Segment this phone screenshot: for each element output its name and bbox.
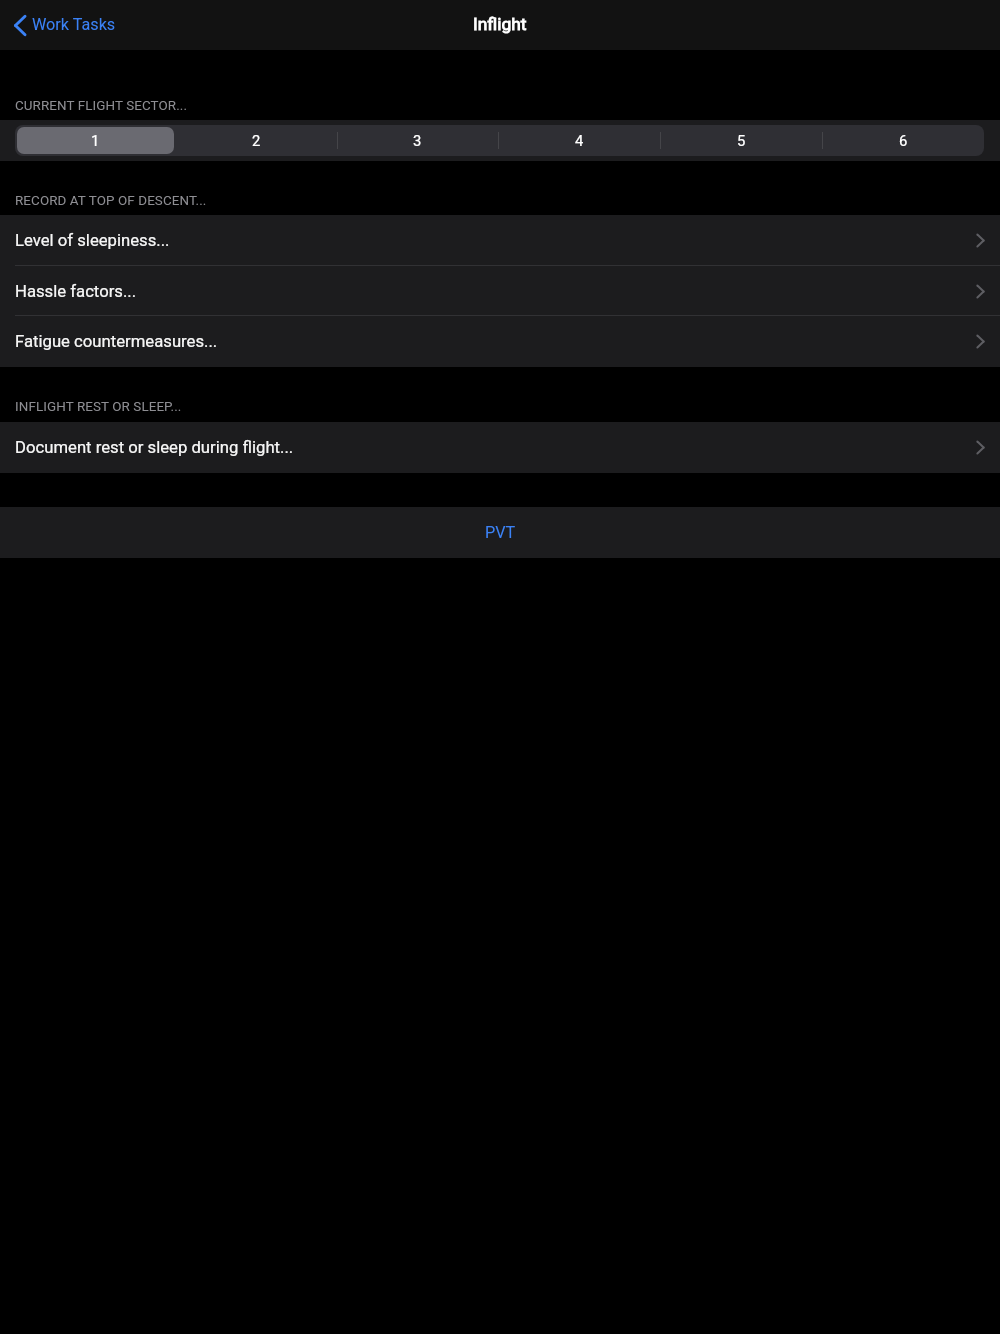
staticText: Work Tasks (32, 15, 116, 34)
other: Back (14, 15, 26, 36)
button[interactable]: 4 (498, 125, 660, 156)
button[interactable]: 5 (660, 125, 822, 156)
staticText: PVT (485, 523, 516, 542)
button[interactable]: 3 (337, 125, 498, 156)
staticText: Inflight (473, 14, 527, 34)
staticText: RECORD AT TOP OF DESCENT... (15, 193, 207, 209)
staticText: Hassle factors... (15, 282, 137, 302)
button[interactable]: Document rest or sleep during flight... (0, 422, 1000, 473)
button[interactable]: Fatigue countermeasures... (0, 316, 1000, 367)
staticText: 1 (91, 132, 100, 149)
button[interactable]: Hassle factors... (0, 266, 1000, 317)
button[interactable]: 6 (822, 125, 984, 156)
button[interactable]: Back (14, 0, 116, 49)
staticText: 4 (575, 132, 584, 149)
button[interactable]: Level of sleepiness... (0, 215, 1000, 266)
staticText: Fatigue countermeasures... (15, 332, 218, 352)
button[interactable]: PVT (0, 507, 1000, 558)
staticText: CURRENT FLIGHT SECTOR... (15, 98, 188, 114)
staticText: INFLIGHT REST OR SLEEP... (15, 399, 182, 415)
staticText: Document rest or sleep during flight... (15, 438, 294, 458)
staticText: 5 (737, 132, 746, 149)
button[interactable]: 1 (15, 125, 176, 156)
staticText: Level of sleepiness... (15, 231, 170, 251)
staticText: 2 (252, 132, 261, 149)
button[interactable]: 2 (176, 125, 337, 156)
staticText: 6 (899, 132, 908, 149)
staticText: 3 (413, 132, 422, 149)
